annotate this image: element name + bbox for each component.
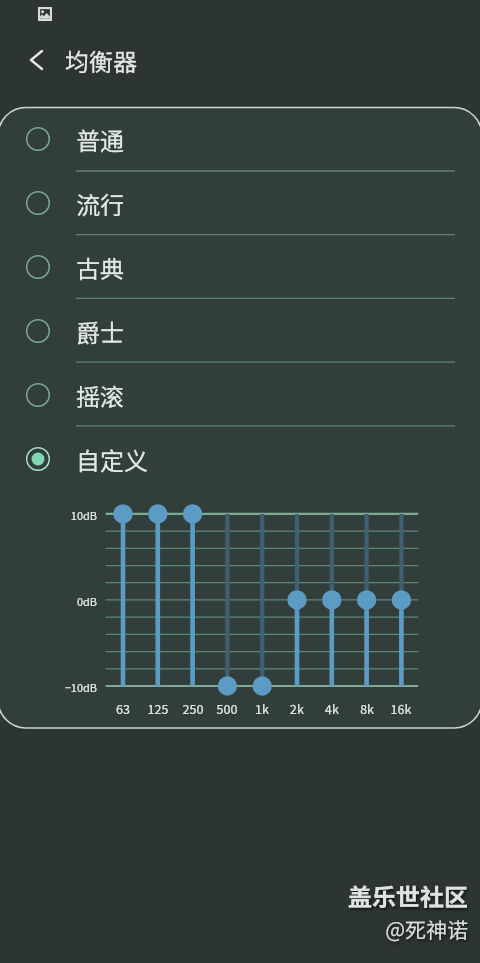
staticText: 0dB [0, 593, 97, 609]
staticText: 均衡器 [65, 43, 137, 78]
staticText: 63 [103, 699, 143, 717]
button[interactable]: 自定义 [0, 427, 480, 491]
staticText: 125 [138, 699, 178, 717]
staticText: 普通 [76, 122, 124, 157]
staticText: 8k [347, 699, 387, 717]
other: Screenshot [38, 7, 52, 21]
staticText: 2k [277, 699, 317, 717]
staticText: 10dB [0, 507, 97, 523]
staticText: 250 [173, 699, 213, 717]
staticText: 1k [242, 699, 282, 717]
button[interactable]: 古典 [0, 235, 480, 299]
button[interactable]: 爵士 [0, 299, 480, 363]
staticText: 4k [312, 699, 352, 717]
staticText: 流行 [76, 186, 124, 221]
button[interactable]: Back [14, 37, 60, 83]
button[interactable]: 摇滚 [0, 363, 480, 427]
staticText: 16k [381, 699, 421, 717]
button[interactable]: 流行 [0, 171, 480, 235]
staticText: 爵士 [76, 314, 124, 349]
button[interactable]: 普通 [0, 107, 480, 171]
staticText: 自定义 [76, 442, 148, 477]
staticText: @死神诺 [0, 914, 468, 944]
staticText: 摇滚 [76, 378, 124, 413]
staticText: 500 [207, 699, 247, 717]
staticText: 盖乐世社区 [0, 878, 468, 913]
staticText: −10dB [0, 679, 97, 695]
staticText: 古典 [76, 250, 124, 285]
